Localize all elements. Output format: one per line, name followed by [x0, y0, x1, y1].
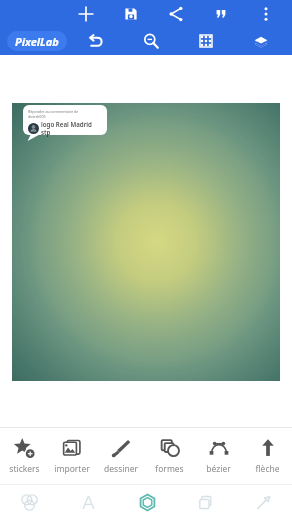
button[interactable]: Text quote — [198, 0, 243, 27]
staticText: Répondre au commentaire de — [28, 109, 79, 114]
button[interactable]: Save — [108, 0, 153, 27]
button[interactable]: flèche — [243, 428, 292, 484]
staticText: dessiner — [104, 463, 138, 475]
button[interactable]: dessiner — [96, 428, 145, 484]
button[interactable]: More options — [243, 0, 288, 27]
button[interactable]: Blend — [0, 484, 59, 520]
button[interactable]: Shape — [118, 484, 176, 520]
button[interactable]: PixelLab — [6, 30, 68, 52]
button[interactable]: Eyedropper — [234, 484, 292, 520]
button[interactable]: bézier — [194, 428, 243, 484]
button[interactable]: Undo — [68, 27, 123, 55]
staticText: stickers — [9, 463, 40, 475]
button[interactable]: Add — [63, 0, 108, 27]
button[interactable]: Zoom — [123, 27, 178, 55]
button[interactable]: Text — [59, 484, 118, 520]
staticText: importer — [54, 463, 90, 475]
staticText: formes — [155, 463, 184, 475]
button[interactable]: Layers — [233, 27, 288, 55]
staticText: dinesh005 — [28, 114, 46, 119]
button[interactable]: Share — [153, 0, 198, 27]
button[interactable]: Duplicate — [176, 484, 234, 520]
button[interactable]: importer — [48, 428, 96, 484]
button[interactable]: Répondre au commentaire de — [12, 103, 280, 381]
button[interactable]: formes — [145, 428, 194, 484]
staticText: logo Real Madrid stp — [41, 120, 103, 136]
staticText: flèche — [255, 463, 280, 475]
button[interactable]: stickers — [0, 428, 48, 484]
button[interactable]: Grid — [178, 27, 233, 55]
button[interactable]: Répondre au commentaire de — [23, 105, 107, 141]
staticText: bézier — [206, 463, 231, 475]
staticText: PixelLab — [15, 34, 59, 49]
